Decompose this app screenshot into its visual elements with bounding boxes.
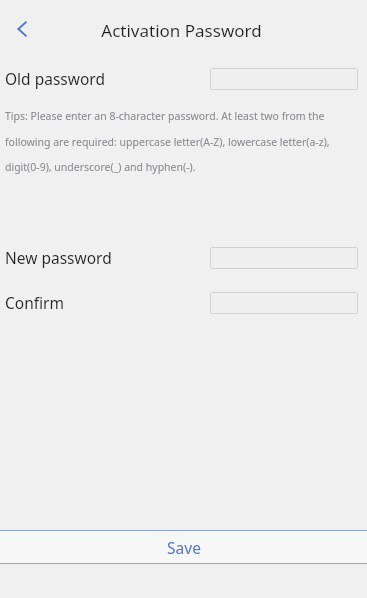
staticText: Confirm xyxy=(5,292,64,313)
button[interactable]: Confirm xyxy=(210,292,358,314)
staticText: New password xyxy=(5,247,112,268)
button[interactable]: Back xyxy=(0,7,44,51)
button[interactable]: New password xyxy=(210,247,358,269)
staticText: Save xyxy=(167,537,201,558)
button[interactable]: Save xyxy=(0,530,367,564)
staticText: Activation Password xyxy=(101,19,262,42)
staticText: Old password xyxy=(5,68,105,89)
staticText: Tips: Please enter an 8-character passwo… xyxy=(5,109,357,174)
button[interactable]: Old password xyxy=(210,68,358,90)
